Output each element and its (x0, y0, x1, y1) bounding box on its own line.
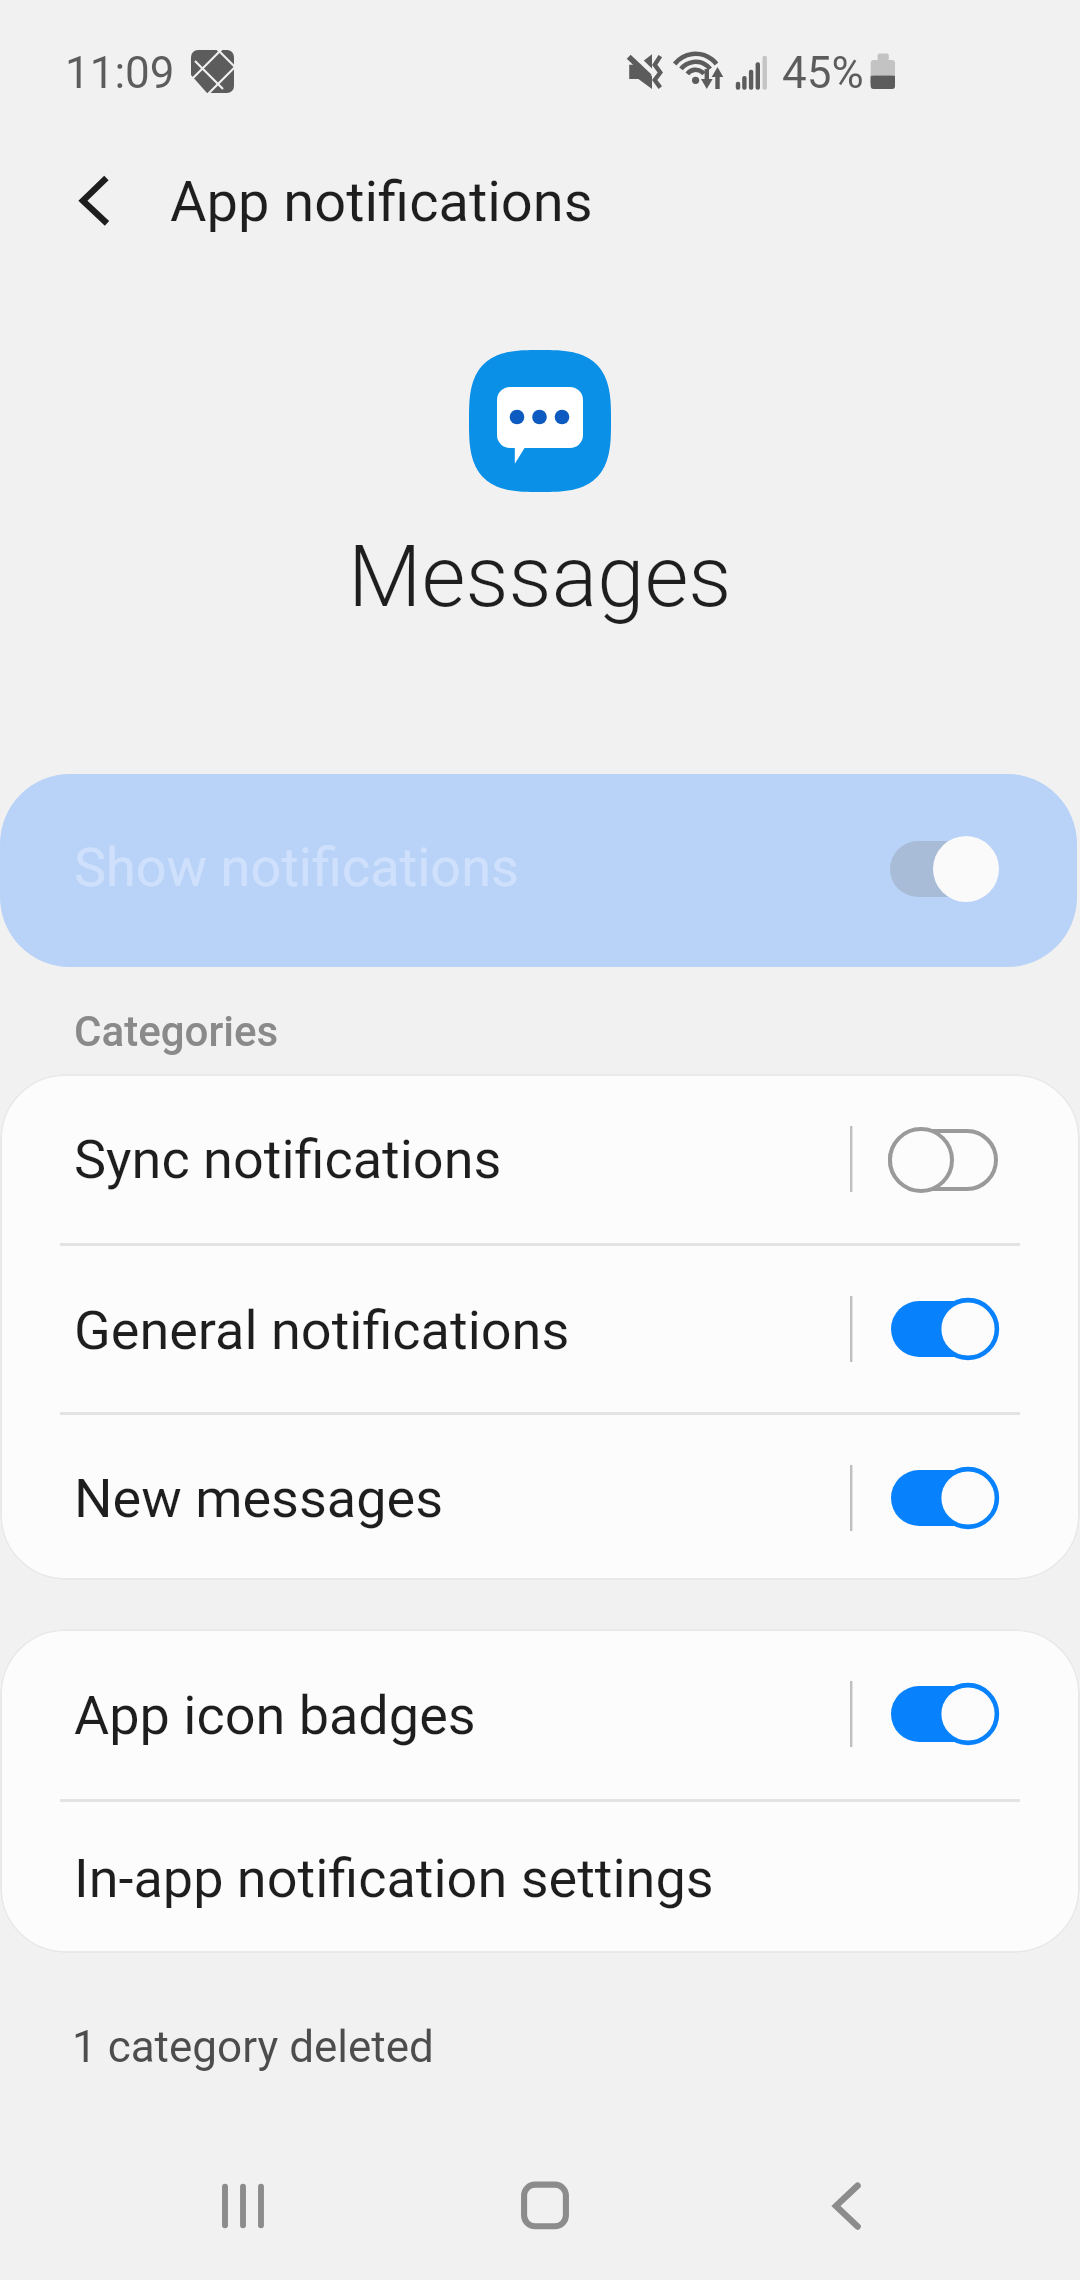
staticText: In-app notification settings (74, 1847, 714, 1910)
button[interactable]: Home (484, 2160, 606, 2252)
staticText: Show notifications (74, 836, 519, 899)
staticText: New messages (74, 1467, 444, 1530)
button[interactable]: Show notifications (0, 774, 1077, 967)
button[interactable]: Sync notifications (0, 1074, 1080, 1243)
button[interactable]: Recent apps (183, 2160, 305, 2252)
staticText: 45% (782, 47, 864, 99)
staticText: Messages (348, 527, 732, 627)
button[interactable]: Back (786, 2160, 908, 2252)
staticText: Categories (74, 1007, 279, 1056)
staticText: General notifications (74, 1299, 570, 1362)
button[interactable]: In-app notification settings (0, 1802, 1080, 1953)
staticText: Sync notifications (74, 1128, 502, 1191)
staticText: App icon badges (74, 1684, 476, 1747)
staticText: 1 category deleted (72, 2021, 434, 2073)
staticText: 11:09 (65, 47, 175, 99)
button[interactable]: New messages (0, 1415, 1080, 1580)
button[interactable]: Navigate up (42, 158, 134, 250)
button[interactable]: General notifications (0, 1246, 1080, 1412)
button[interactable]: App icon badges (0, 1629, 1080, 1799)
staticText: App notifications (170, 169, 593, 235)
